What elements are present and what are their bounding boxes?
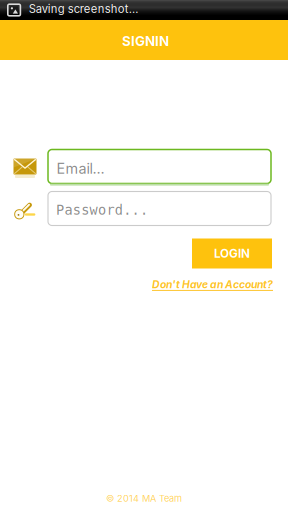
staticText: LOGIN — [214, 246, 250, 261]
button[interactable]: SIGNIN — [0, 20, 288, 60]
staticText: SIGNIN — [122, 33, 169, 49]
staticText: Don't Have an Account? — [152, 278, 273, 291]
staticText: Password... — [56, 202, 148, 218]
staticText: Saving screenshot… — [29, 2, 139, 16]
staticText: © 2014 MA Team — [106, 493, 182, 504]
button[interactable]: LOGIN — [192, 238, 272, 268]
staticText: Email... — [56, 160, 104, 177]
button[interactable]: Don't Have an Account? — [152, 278, 288, 291]
